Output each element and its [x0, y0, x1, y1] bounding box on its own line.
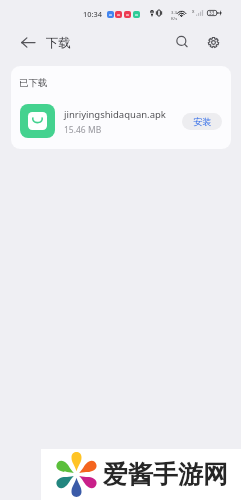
- staticText: K/s: [171, 16, 178, 22]
- button[interactable]: Back: [16, 30, 40, 54]
- button[interactable]: 安装: [182, 113, 222, 130]
- staticText: x: [192, 8, 195, 14]
- staticText: 10:34: [83, 9, 102, 19]
- staticText: 爱酱手游网: [103, 459, 228, 490]
- button[interactable]: Settings: [201, 30, 225, 54]
- staticText: 33: [209, 10, 215, 16]
- staticText: 3.3: [171, 10, 177, 16]
- staticText: 安装: [193, 116, 212, 128]
- button[interactable]: Search: [170, 30, 194, 54]
- staticText: 15.46 MB: [64, 124, 102, 136]
- staticText: jinriyingshidaquan.apk: [64, 108, 166, 121]
- staticText: 已下载: [19, 77, 48, 89]
- staticText: 下载: [46, 35, 71, 51]
